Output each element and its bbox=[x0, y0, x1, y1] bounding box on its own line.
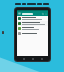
button[interactable] bbox=[17, 26, 48, 31]
button[interactable] bbox=[17, 16, 48, 21]
button[interactable]: Menu bbox=[17, 11, 48, 16]
button[interactable]: Menu bbox=[18, 12, 21, 15]
button[interactable] bbox=[17, 21, 48, 26]
button[interactable]: More options bbox=[45, 13, 47, 15]
button[interactable]: Search bbox=[42, 13, 44, 15]
button[interactable] bbox=[17, 31, 48, 36]
